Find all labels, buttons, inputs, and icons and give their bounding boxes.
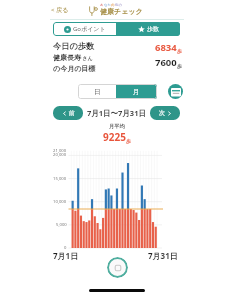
staticText: 20,000 [53,152,67,158]
staticText: < 戻る [51,6,69,14]
staticText: 歩数 [147,25,159,33]
staticText: の今月の目標 [53,64,96,73]
staticText: の [111,3,115,7]
button[interactable]: 前 [53,106,83,120]
staticText: 日 [94,88,101,96]
staticText: 7600 [155,56,177,69]
button[interactable]: ホーム [107,257,128,278]
staticText: 21,000 [53,148,67,154]
staticText: 前 [69,109,75,117]
staticText: 健康チェック [100,7,143,16]
staticText: 5,000 [56,222,67,228]
staticText: 6834 [155,41,177,54]
staticText: 15,000 [53,176,67,182]
staticText: 月 [133,88,140,96]
staticText: 街の [115,3,122,7]
button[interactable]: Goポイント [53,22,116,36]
staticText: 歩 [126,138,131,144]
staticText: 月平均 [109,123,125,130]
staticText: 7月1日 [53,250,79,261]
staticText: 0 [64,245,67,251]
staticText: 9225 [103,130,126,144]
button[interactable]: 日 [78,84,116,99]
staticText: 歩 [177,48,182,54]
button[interactable]: < 戻る [51,4,69,15]
staticText: さん [81,55,93,62]
staticText: 次 [159,109,165,117]
staticText: あ [100,3,104,7]
button[interactable]: 歩数 [116,22,180,36]
button[interactable]: 次 [150,106,180,120]
button[interactable]: カレンダー [168,84,183,99]
staticText: Goポイント [73,25,106,33]
staticText: 7月31日 [148,250,178,261]
staticText: 10,000 [53,199,67,205]
staticText: 歩 [177,63,182,69]
button[interactable]: 月 [116,84,157,99]
staticText: 7月1日〜7月31日 [87,108,146,118]
staticText: 今日の歩数 [53,41,95,51]
staticText: 健康長寿 [53,53,81,62]
staticText: なた [104,3,111,7]
